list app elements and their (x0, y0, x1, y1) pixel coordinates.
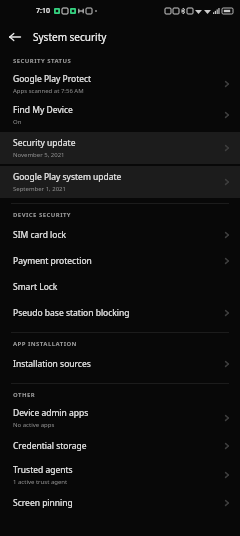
staticText: Payment protection (13, 255, 92, 267)
staticText: Pseudo base station blocking (13, 307, 130, 319)
button[interactable]: Credential storage (0, 433, 240, 459)
staticText: OTHER (13, 391, 36, 399)
button[interactable]: Installation sources (0, 351, 240, 377)
button[interactable]: Find My Device (0, 99, 240, 130)
staticText: SECURITY STATUS (13, 57, 72, 65)
button[interactable]: Payment protection (0, 248, 240, 274)
staticText: Smart Lock (13, 281, 58, 293)
staticText: Google Play system update (13, 171, 122, 183)
staticText: Security update (13, 137, 76, 149)
button[interactable]: Device admin apps (0, 402, 240, 433)
staticText: DEVICE SECURITY (13, 211, 72, 219)
staticText: Credential storage (13, 440, 87, 452)
staticText: Apps scanned at 7:56 AM (13, 87, 84, 95)
staticText: 1 active trust agent (13, 478, 68, 486)
staticText: No active apps (13, 421, 55, 429)
button[interactable]: Google Play Protect (0, 68, 240, 99)
button[interactable]: Security update (0, 132, 240, 164)
staticText: Screen pinning (13, 497, 73, 509)
button[interactable]: SIM card lock (0, 222, 240, 248)
staticText: Google Play Protect (13, 73, 92, 85)
staticText: November 5, 2021 (13, 151, 65, 159)
staticText: System security (33, 30, 107, 44)
button[interactable]: Screen pinning (0, 490, 240, 516)
staticText: Trusted agents (13, 464, 73, 476)
staticText: 7:10 (36, 6, 50, 16)
staticText: Find My Device (13, 104, 73, 116)
staticText: Device admin apps (13, 407, 89, 419)
staticText: APP INSTALLATION (13, 340, 77, 348)
staticText: Installation sources (13, 358, 91, 370)
button[interactable]: Smart Lock (0, 274, 240, 300)
button[interactable]: Back (0, 22, 30, 51)
staticText: On (13, 118, 22, 126)
button[interactable]: Google Play system update (0, 166, 240, 198)
button[interactable]: Trusted agents (0, 459, 240, 490)
staticText: SIM card lock (13, 229, 67, 241)
button[interactable]: Pseudo base station blocking (0, 300, 240, 326)
staticText: September 1, 2021 (13, 185, 66, 193)
